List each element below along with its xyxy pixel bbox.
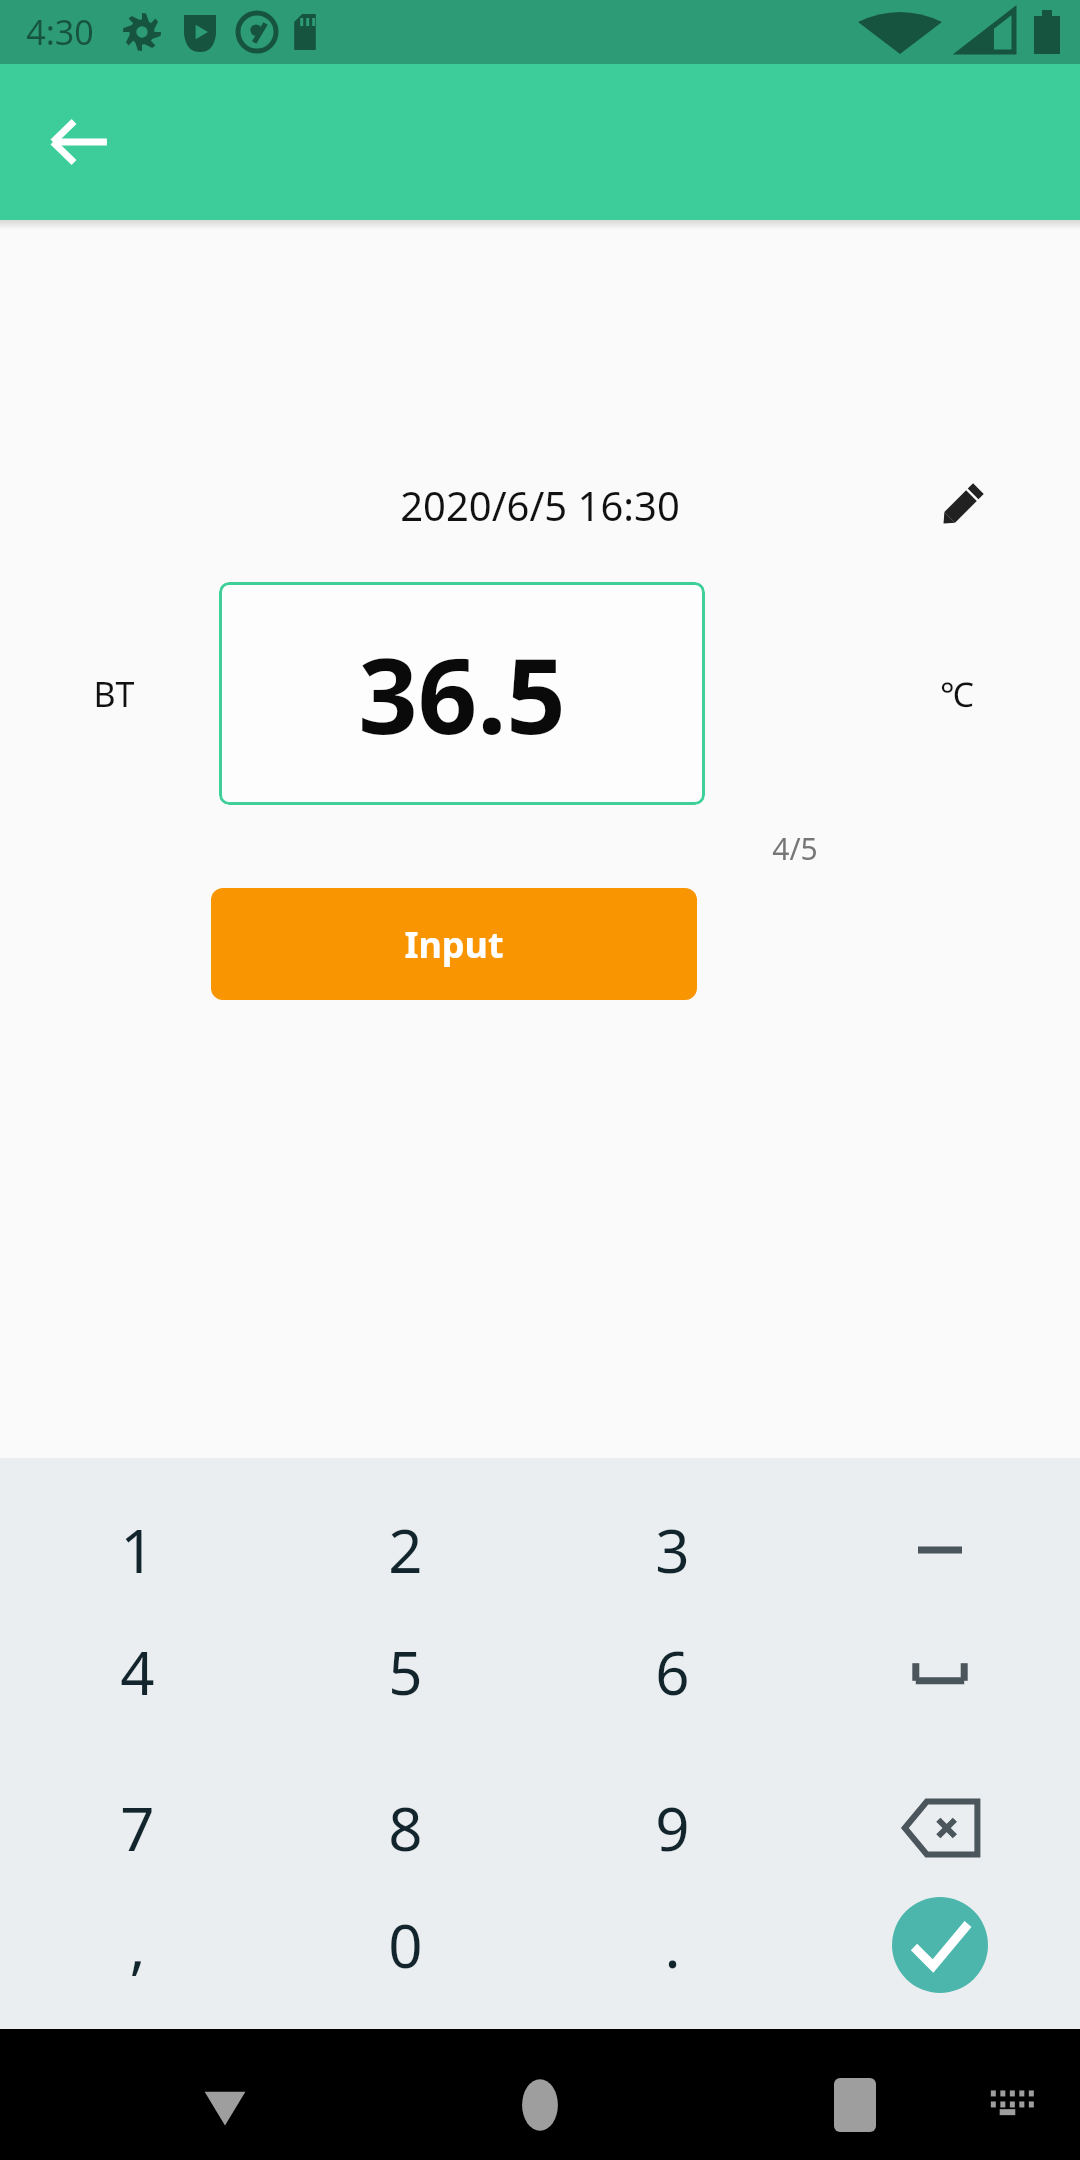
button[interactable]: Back (165, 2045, 285, 2160)
staticText: Input (404, 920, 504, 969)
staticText: 4:30 (26, 9, 94, 55)
staticText: 5 (388, 1631, 423, 1713)
staticText: 9 (655, 1787, 690, 1869)
button[interactable]: , (4, 1885, 270, 2005)
button[interactable]: Home (480, 2045, 600, 2160)
button[interactable]: Minus (807, 1490, 1073, 1610)
staticText: 3 (655, 1509, 690, 1591)
staticText: ℃ (940, 671, 974, 717)
button[interactable]: Back (24, 87, 134, 197)
staticText: 0 (388, 1904, 423, 1986)
button[interactable]: 2 (272, 1490, 538, 1610)
button[interactable]: Input (211, 888, 697, 1000)
staticText: 2 (388, 1509, 423, 1591)
staticText: 36.5 (358, 623, 566, 765)
button[interactable]: 7 (4, 1768, 270, 1888)
staticText: 4/5 (772, 828, 818, 869)
button[interactable]: 36.5 (219, 582, 705, 805)
staticText: , (129, 1904, 146, 1986)
button[interactable]: Backspace (807, 1768, 1073, 1888)
button[interactable]: 6 (539, 1612, 805, 1732)
staticText: 4 (120, 1631, 155, 1713)
button[interactable]: . (539, 1885, 805, 2005)
button[interactable]: 4 (4, 1612, 270, 1732)
staticText: BT (93, 671, 135, 717)
button[interactable]: 5 (272, 1612, 538, 1732)
button[interactable]: 8 (272, 1768, 538, 1888)
button[interactable]: Enter (880, 1885, 1000, 2005)
button[interactable]: 1 (4, 1490, 270, 1610)
button[interactable]: Recents (795, 2045, 915, 2160)
staticText: 7 (120, 1787, 155, 1869)
staticText: 8 (388, 1787, 423, 1869)
button[interactable]: Edit (910, 462, 1014, 548)
button[interactable]: 0 (272, 1885, 538, 2005)
button[interactable]: 3 (539, 1490, 805, 1610)
staticText: 1 (120, 1509, 155, 1591)
button[interactable]: Switch keyboard (958, 2055, 1058, 2155)
staticText: . (664, 1904, 681, 1986)
staticText: 6 (655, 1631, 690, 1713)
staticText: 2020/6/5 16:30 (400, 478, 680, 532)
button[interactable]: 9 (539, 1768, 805, 1888)
button[interactable]: Space (807, 1612, 1073, 1732)
